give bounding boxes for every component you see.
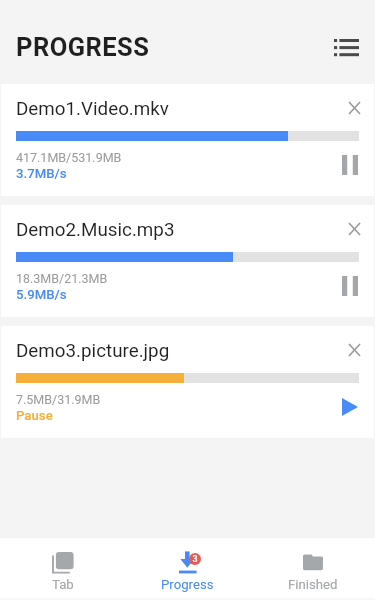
staticText: PROGRESS bbox=[16, 32, 150, 62]
staticText: Pause bbox=[16, 408, 53, 423]
button[interactable]: Demo2.Music.mp3 bbox=[1, 205, 374, 317]
staticText: 417.1MB/531.9MB bbox=[16, 150, 122, 165]
button[interactable]: Cancel bbox=[337, 212, 371, 246]
button[interactable]: Menu bbox=[326, 27, 366, 67]
staticText: 5.9MB/s bbox=[16, 287, 67, 302]
button[interactable]: Cancel bbox=[337, 91, 371, 125]
staticText: Demo1.Video.mkv bbox=[16, 98, 169, 120]
staticText: 7.5MB/31.9MB bbox=[16, 392, 101, 407]
staticText: 3.7MB/s bbox=[16, 166, 67, 181]
button[interactable]: 3 bbox=[125, 538, 250, 598]
button[interactable]: Finished bbox=[250, 538, 375, 598]
button[interactable]: Pause bbox=[334, 149, 366, 181]
button[interactable]: Cancel bbox=[337, 333, 371, 367]
button[interactable]: Tab bbox=[0, 538, 125, 598]
staticText: Tab bbox=[52, 577, 74, 592]
button[interactable]: Demo1.Video.mkv bbox=[1, 84, 374, 196]
staticText: 18.3MB/21.3MB bbox=[16, 271, 108, 286]
button[interactable]: Demo3.picture.jpg bbox=[1, 326, 374, 438]
staticText: Demo3.picture.jpg bbox=[16, 340, 170, 362]
button[interactable]: Pause bbox=[334, 270, 366, 302]
staticText: Demo2.Music.mp3 bbox=[16, 219, 175, 241]
staticText: Finished bbox=[288, 577, 338, 592]
staticText: Progress bbox=[161, 577, 214, 592]
staticText: 3 bbox=[192, 554, 198, 565]
button[interactable]: Resume bbox=[334, 391, 366, 423]
